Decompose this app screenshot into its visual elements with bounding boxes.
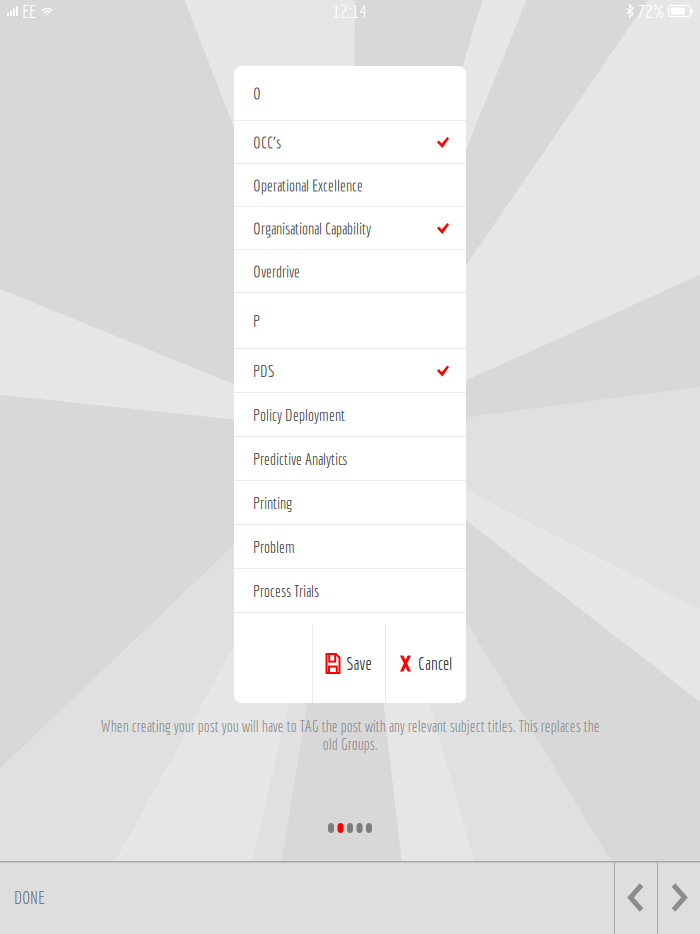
button[interactable]: P bbox=[234, 293, 466, 349]
staticText: Organisational Capability bbox=[253, 219, 371, 238]
button[interactable]: O bbox=[234, 66, 466, 121]
button[interactable]: Policy Deployment bbox=[234, 393, 466, 437]
staticText: Process Trials bbox=[253, 582, 319, 600]
staticText: Save bbox=[346, 653, 371, 673]
staticText: Printing bbox=[253, 494, 292, 512]
staticText: Policy Deployment bbox=[253, 406, 345, 424]
button[interactable]: Operational Excellence bbox=[234, 164, 466, 207]
button[interactable]: Problem bbox=[234, 525, 466, 569]
button[interactable]: DONE bbox=[0, 861, 160, 934]
button[interactable]: Predictive Analytics bbox=[234, 437, 466, 481]
staticText: PDS bbox=[253, 362, 274, 380]
button[interactable]: Overdrive bbox=[234, 250, 466, 293]
staticText: Predictive Analytics bbox=[253, 450, 348, 468]
button[interactable]: Save bbox=[313, 624, 385, 703]
staticText: Overdrive bbox=[253, 262, 300, 281]
staticText: Cancel bbox=[418, 653, 452, 673]
staticText: When creating your post you will have to… bbox=[100, 717, 599, 753]
button[interactable]: PDS bbox=[234, 349, 466, 393]
staticText: EE bbox=[22, 0, 36, 22]
button[interactable]: Process Trials bbox=[234, 569, 466, 613]
button[interactable]: OCC's bbox=[234, 121, 466, 164]
button[interactable]: Previous bbox=[615, 861, 657, 934]
button[interactable]: Printing bbox=[234, 481, 466, 525]
staticText: P bbox=[253, 312, 260, 330]
staticText: 72% bbox=[637, 0, 664, 22]
staticText: DONE bbox=[14, 887, 45, 907]
staticText: O bbox=[253, 84, 261, 103]
staticText: Problem bbox=[253, 538, 295, 556]
staticText: Operational Excellence bbox=[253, 176, 363, 195]
button[interactable]: Organisational Capability bbox=[234, 207, 466, 250]
button[interactable]: Cancel bbox=[386, 624, 466, 703]
button[interactable]: Next bbox=[658, 861, 700, 934]
staticText: OCC's bbox=[253, 133, 281, 152]
staticText: 12:14 bbox=[332, 0, 367, 22]
